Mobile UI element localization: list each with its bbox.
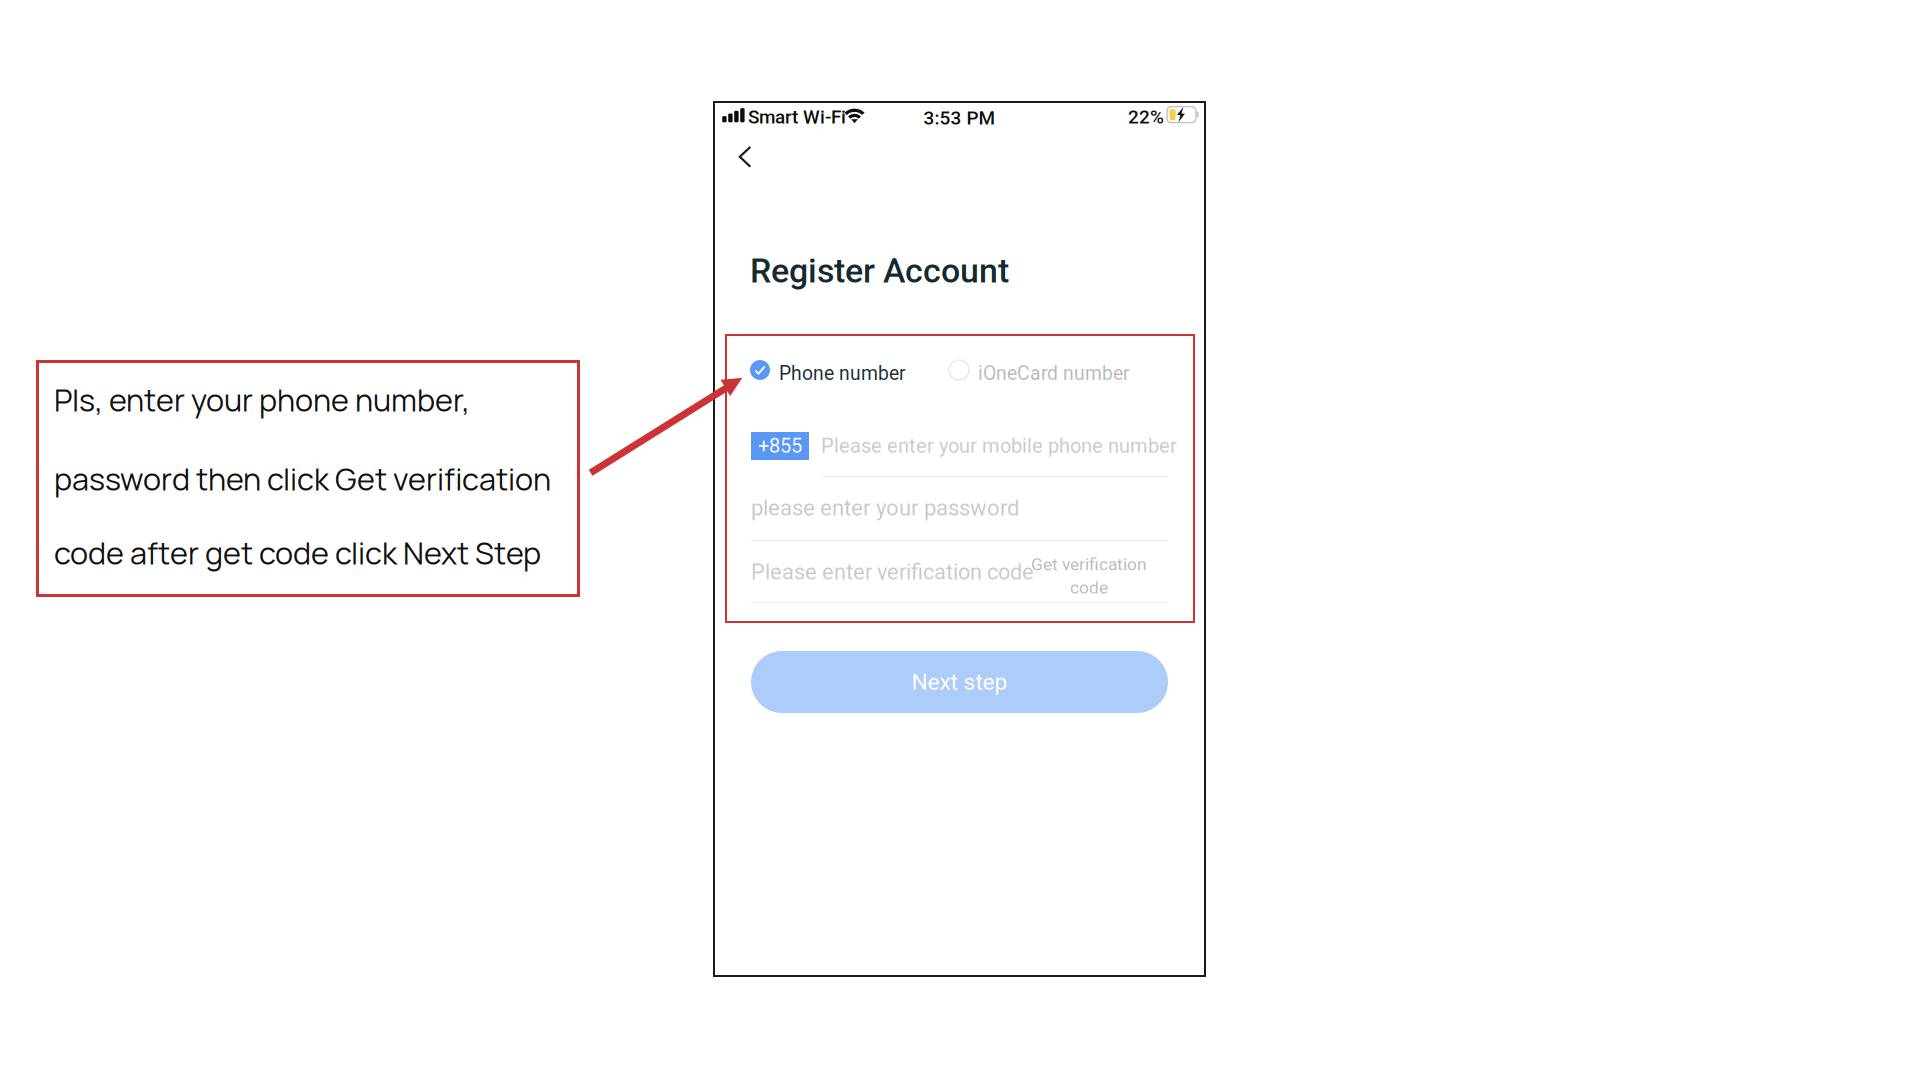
button[interactable]: Phone number [750, 355, 922, 385]
staticText: +855 [758, 434, 802, 458]
staticText: Next step [911, 669, 1007, 695]
staticText: 3:53 PM [923, 107, 995, 129]
staticText: code after get code click Next Step [54, 532, 541, 574]
button[interactable]: Back [728, 136, 772, 180]
staticText: 22% [1128, 106, 1164, 128]
button[interactable]: Next step [751, 651, 1168, 713]
staticText: Please enter your mobile phone number [821, 434, 1177, 458]
button[interactable]: Get verification [1029, 552, 1149, 600]
staticText: iOneCard number [978, 362, 1130, 385]
staticText: password then click Get verification [54, 458, 551, 500]
staticText: code [1070, 577, 1108, 598]
staticText: Register Account [750, 251, 1009, 291]
staticText: Smart Wi-Fi [748, 106, 846, 128]
staticText: Pls, enter your phone number, [54, 379, 470, 421]
staticText: Phone number [779, 362, 906, 385]
staticText: please enter your password [751, 495, 1019, 521]
staticText: Get verification [1031, 554, 1147, 574]
button[interactable]: iOneCard number [949, 355, 1139, 385]
staticText: Please enter verification code [751, 559, 1034, 585]
